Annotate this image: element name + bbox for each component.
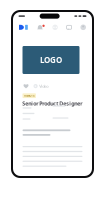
button[interactable]: Save job xyxy=(23,84,28,88)
button[interactable]: Notifications xyxy=(37,25,44,30)
button[interactable]: Video xyxy=(33,84,48,88)
staticText: REMOTE xyxy=(24,94,34,97)
staticText: Senior Product Designer xyxy=(22,100,82,107)
button[interactable]: LOGO xyxy=(22,46,79,74)
button[interactable]: Messages xyxy=(67,25,72,30)
button[interactable]: Reactions xyxy=(52,25,58,30)
button[interactable]: Home xyxy=(19,25,28,30)
button[interactable]: Profile xyxy=(80,24,86,30)
staticText: Video xyxy=(39,83,48,89)
staticText: LOGO xyxy=(40,55,62,65)
